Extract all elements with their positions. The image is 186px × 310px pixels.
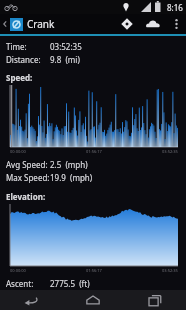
button[interactable]: Crank	[0, 17, 59, 31]
staticText: 19.9 (mph)	[50, 172, 93, 183]
staticText: Max Speed:	[6, 172, 50, 183]
staticText: Elevation:	[6, 191, 46, 202]
staticText: Distance:	[6, 54, 50, 65]
button[interactable]: Recent apps	[124, 290, 186, 310]
staticText: 8:16	[167, 2, 183, 13]
staticText: Avg Speed:	[6, 159, 50, 170]
staticText: 03:52:35	[162, 149, 178, 154]
button[interactable]: Upload	[140, 14, 166, 34]
staticText: 2.5 (mph)	[50, 159, 88, 170]
staticText: 01:56:17	[86, 268, 102, 273]
staticText: 01:56:17	[86, 149, 102, 154]
staticText: 2775.5 (ft)	[50, 278, 90, 289]
button[interactable]: Home	[62, 290, 124, 310]
button[interactable]: Back	[0, 290, 62, 310]
staticText: 00:00:00	[10, 149, 26, 154]
button[interactable]: More options	[166, 14, 186, 34]
staticText: Time:	[6, 41, 50, 52]
staticText: 03:52:35	[162, 268, 178, 273]
staticText: 03:52:35	[50, 41, 82, 52]
staticText: Speed:	[6, 72, 33, 83]
button[interactable]: Map	[114, 14, 140, 34]
staticText: Ascent:	[6, 278, 50, 289]
staticText: Crank	[27, 17, 55, 31]
staticText: 00:00:00	[10, 268, 26, 273]
staticText: 9.8 (mi)	[50, 54, 80, 65]
